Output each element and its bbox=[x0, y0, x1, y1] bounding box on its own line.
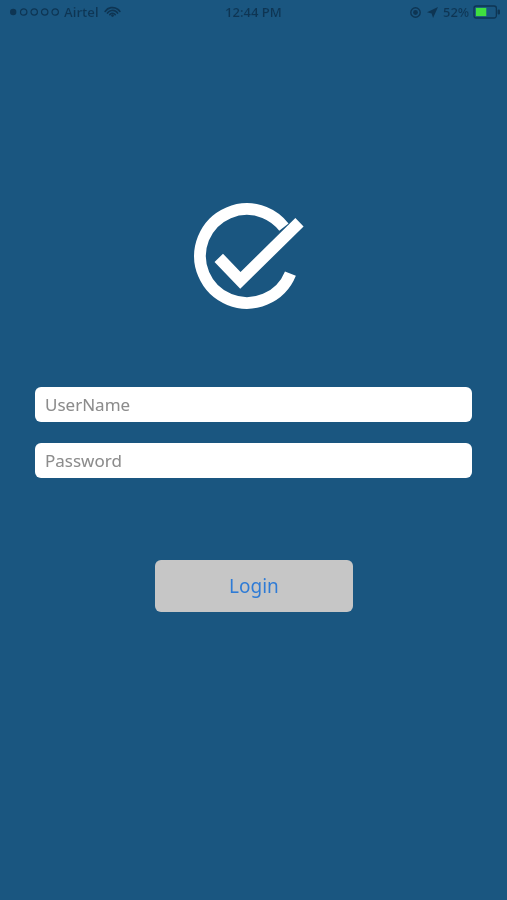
button[interactable]: UserName bbox=[35, 387, 472, 422]
button[interactable]: Password bbox=[35, 443, 472, 478]
button[interactable]: Login bbox=[155, 560, 353, 612]
staticText: Airtel bbox=[64, 3, 99, 21]
staticText: Login bbox=[229, 573, 279, 599]
staticText: UserName bbox=[45, 393, 131, 416]
staticText: Password bbox=[45, 449, 122, 472]
staticText: 52% bbox=[443, 3, 470, 21]
staticText: 12:44 PM bbox=[225, 3, 282, 21]
